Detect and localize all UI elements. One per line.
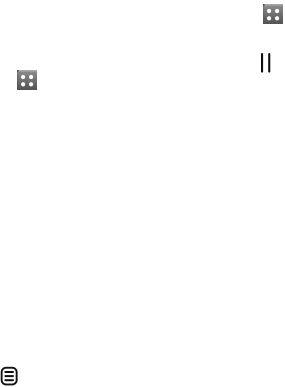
button[interactable]: List [2, 368, 17, 384]
button[interactable]: Apps [263, 4, 283, 24]
button[interactable]: Pause [261, 53, 270, 73]
button[interactable]: Apps [17, 70, 37, 90]
